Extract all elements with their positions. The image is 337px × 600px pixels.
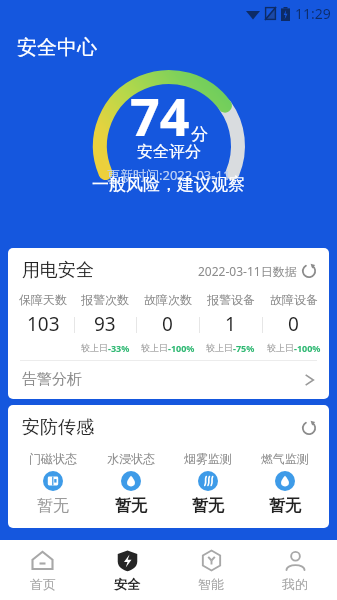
staticText: 0	[162, 311, 173, 337]
button[interactable]: 刷新	[301, 420, 317, 436]
staticText: 分	[191, 124, 208, 145]
staticText: 103	[27, 311, 60, 337]
staticText: 暂无	[115, 496, 147, 516]
staticText: 一般风险，建议观察	[92, 174, 245, 195]
staticText: 燃气监测	[261, 451, 309, 466]
staticText: 更新时间:2022-03-11	[107, 166, 231, 184]
staticText: 智能	[198, 576, 224, 592]
button[interactable]: 首页	[0, 542, 85, 598]
button[interactable]: 燃气监测	[246, 451, 323, 516]
staticText: 2022-03-11日数据	[198, 263, 297, 279]
staticText: 0	[288, 311, 299, 337]
staticText: 安全评分	[137, 142, 201, 162]
staticText: 保障天数	[19, 292, 67, 307]
button[interactable]: 烟雾监测	[169, 451, 246, 516]
staticText: 门磁状态	[29, 451, 77, 466]
staticText: 首页	[30, 576, 56, 592]
staticText: 较上日	[206, 342, 233, 353]
staticText: -100%	[168, 342, 195, 354]
staticText: 烟雾监测	[184, 451, 232, 466]
staticText: -33%	[108, 342, 130, 354]
button[interactable]: 我的	[253, 542, 337, 598]
staticText: 报警设备	[207, 292, 255, 307]
button[interactable]: 智能	[169, 542, 253, 598]
staticText: 较上日	[81, 342, 108, 353]
staticText: 11:29	[295, 4, 331, 23]
staticText: 安全	[114, 576, 140, 592]
staticText: 报警次数	[81, 292, 129, 307]
staticText: 较上日	[141, 342, 168, 353]
staticText: 告警分析	[22, 370, 82, 389]
staticText: 较上日	[267, 342, 294, 353]
staticText: 暂无	[269, 496, 301, 516]
staticText: 故障设备	[270, 292, 318, 307]
staticText: 安全中心	[17, 35, 97, 60]
staticText: -100%	[294, 342, 321, 354]
staticText: 93	[94, 311, 116, 337]
button[interactable]: 水浸状态	[92, 451, 169, 516]
staticText: 安防传感	[22, 416, 94, 439]
staticText: 暂无	[37, 496, 69, 516]
staticText: 暂无	[192, 496, 224, 516]
staticText: -75%	[233, 342, 255, 354]
staticText: 用电安全	[22, 259, 94, 282]
staticText: 1	[225, 311, 236, 337]
button[interactable]: 门磁状态	[14, 451, 92, 516]
staticText: 74	[130, 80, 190, 151]
staticText: 故障次数	[144, 292, 192, 307]
button[interactable]: 刷新	[301, 263, 317, 279]
staticText: 我的	[282, 576, 308, 592]
staticText: 水浸状态	[107, 451, 155, 466]
button[interactable]: 告警分析	[8, 361, 329, 399]
button[interactable]: 安全	[85, 542, 169, 598]
